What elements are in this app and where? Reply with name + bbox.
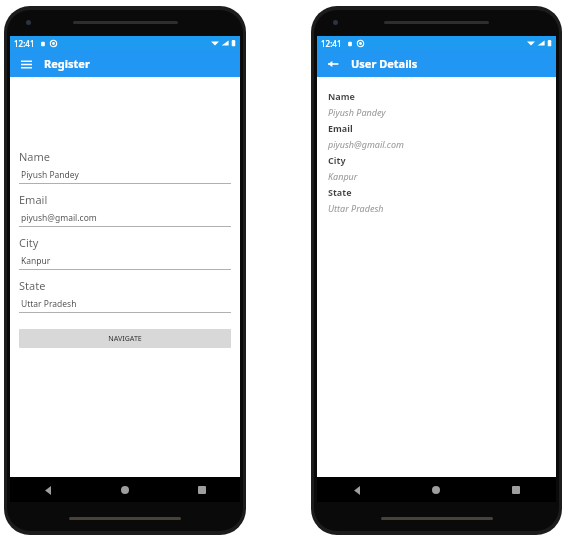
button[interactable]: Recents: [191, 479, 213, 501]
button[interactable]: Open navigation menu: [16, 54, 36, 74]
staticText: Kanpur: [328, 170, 358, 182]
button[interactable]: Home: [114, 479, 136, 501]
staticText: State: [19, 278, 46, 293]
staticText: Uttar Pradesh: [328, 202, 384, 214]
button[interactable]: NAVIGATE: [19, 329, 231, 348]
button[interactable]: Recents: [505, 479, 527, 501]
staticText: Email: [19, 192, 48, 207]
button[interactable]: Home: [425, 479, 447, 501]
staticText: Name: [19, 149, 51, 164]
staticText: 12:41: [14, 38, 35, 49]
staticText: Register: [44, 56, 90, 71]
staticText: piyush@gmail.com: [328, 138, 404, 150]
staticText: City: [19, 235, 39, 250]
staticText: Piyush Pandey: [328, 106, 386, 118]
staticText: City: [328, 154, 346, 166]
staticText: Uttar Pradesh: [21, 298, 77, 310]
button[interactable]: Back: [37, 479, 59, 501]
staticText: Kanpur: [21, 255, 51, 267]
staticText: 12:41: [321, 38, 342, 49]
staticText: Piyush Pandey: [21, 169, 79, 181]
staticText: piyush@gmail.com: [21, 212, 97, 224]
button[interactable]: Back: [346, 479, 368, 501]
staticText: User Details: [351, 56, 418, 71]
staticText: State: [328, 186, 352, 198]
staticText: NAVIGATE: [108, 334, 142, 344]
staticText: Name: [328, 90, 355, 102]
button[interactable]: Navigate up: [323, 54, 343, 74]
staticText: Email: [328, 122, 353, 134]
